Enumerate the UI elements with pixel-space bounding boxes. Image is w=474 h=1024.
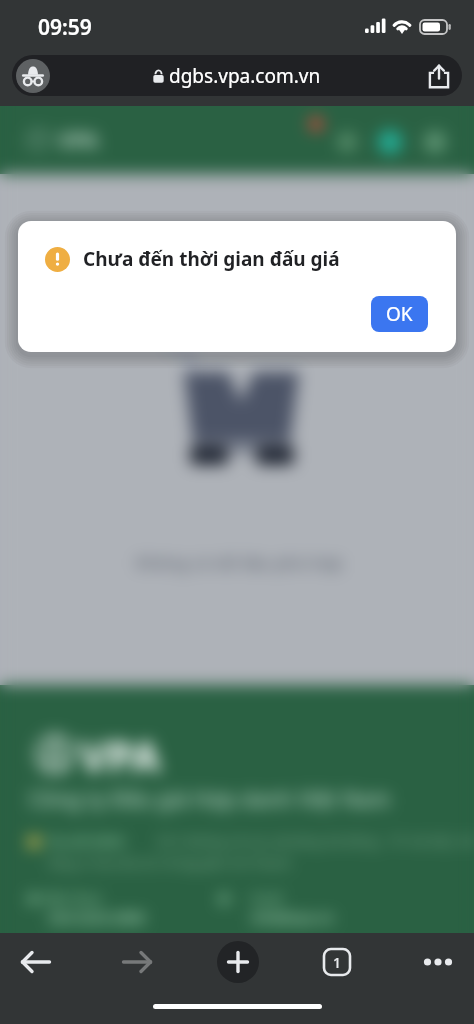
staticText: Chưa đến thời gian đấu giá (83, 246, 340, 272)
staticText: 09:59 (38, 13, 92, 42)
button[interactable]: New tab (202, 933, 274, 991)
button[interactable]: Back (0, 933, 72, 991)
staticText: info@vpa.vn (251, 908, 334, 927)
staticText: dgbs.vpa.com.vn (169, 63, 321, 89)
button[interactable]: Share (419, 56, 458, 95)
button[interactable]: Tabs (274, 933, 402, 991)
staticText: Công ty Đấu giá Hợp danh Việt Nam (29, 785, 391, 814)
staticText: Email (251, 890, 282, 906)
staticText: 024.3224.2868 (49, 908, 145, 927)
staticText: OK (386, 301, 413, 327)
button[interactable]: More (402, 933, 474, 991)
staticText: VPA (80, 727, 161, 784)
button[interactable]: Forward (72, 933, 202, 991)
button[interactable]: dgbs.vpa.com.vn (12, 55, 462, 96)
button[interactable]: OK (371, 296, 428, 332)
staticText: VPA (58, 126, 99, 155)
staticText: 1 (333, 953, 342, 972)
button[interactable]: Private browsing (14, 57, 51, 94)
staticText: Điện thoại (43, 890, 101, 906)
